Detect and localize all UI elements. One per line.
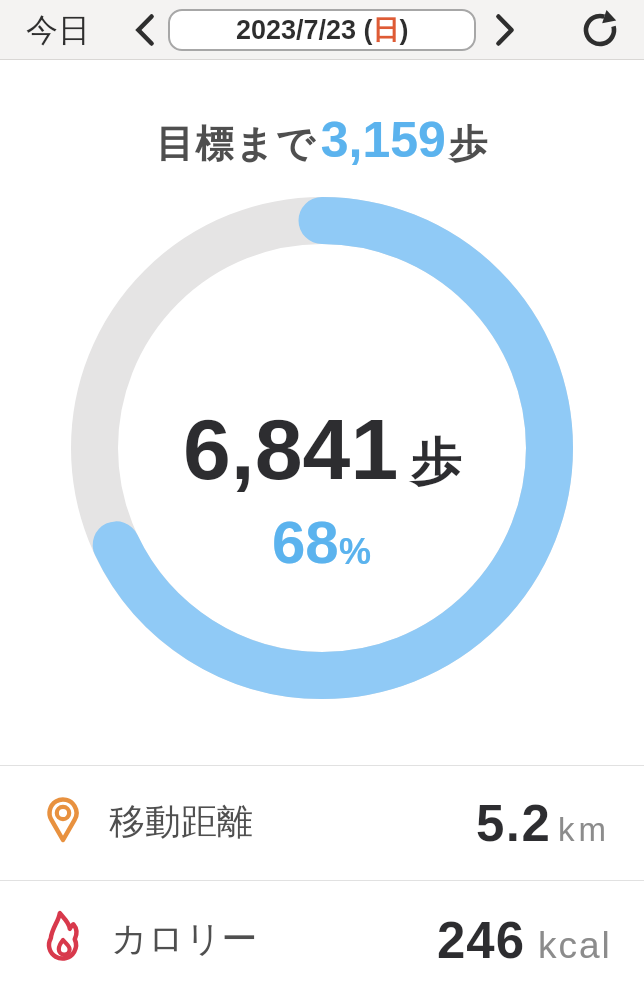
staticText: 歩 (411, 431, 461, 494)
button[interactable]: カロリー (0, 881, 644, 1000)
staticText: 6,841 (183, 401, 399, 497)
button[interactable] (494, 15, 516, 45)
staticText: カロリー (111, 916, 258, 961)
button[interactable]: 移動距離 (0, 766, 644, 880)
staticText: 246 (437, 912, 526, 969)
button[interactable] (134, 15, 156, 45)
staticText: 2023/7/23 (日) (236, 13, 409, 47)
staticText: 移動距離 (109, 799, 253, 844)
button[interactable] (577, 7, 621, 51)
staticText: kcal (538, 925, 612, 966)
staticText: 68 (272, 509, 339, 576)
button[interactable]: 今日 (26, 10, 90, 50)
staticText: 目標まで 3,159 歩 (156, 112, 488, 169)
button[interactable]: 2023/7/23 (日) (168, 9, 476, 51)
staticText: 今日 (26, 10, 90, 50)
staticText: 5.2 (476, 795, 552, 852)
staticText: km (558, 811, 610, 848)
staticText: % (339, 531, 372, 571)
